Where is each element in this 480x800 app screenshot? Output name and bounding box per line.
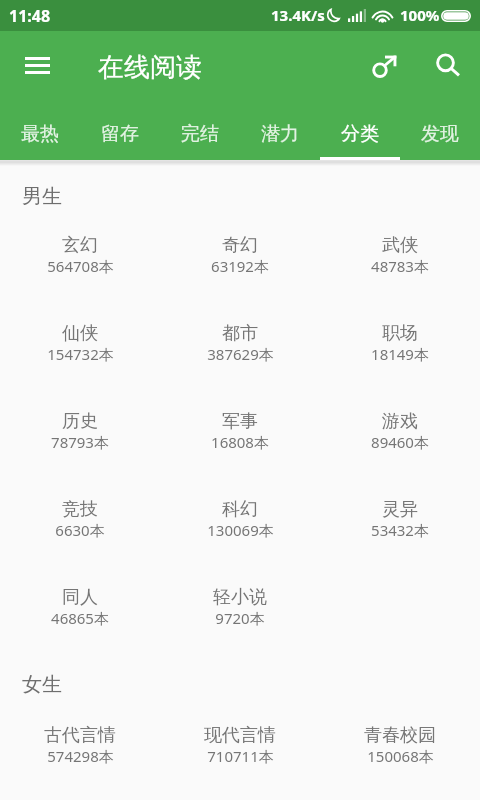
- button[interactable]: Open navigation menu: [12, 40, 62, 90]
- staticText: 青春校园: [364, 724, 436, 747]
- staticText: 武侠: [382, 234, 418, 257]
- staticText: 18149本: [371, 344, 429, 364]
- button[interactable]: 完结: [160, 101, 240, 160]
- staticText: 11:48: [9, 5, 51, 27]
- button[interactable]: 历史: [0, 388, 160, 476]
- button[interactable]: 现代言情: [160, 702, 320, 790]
- staticText: 710711本: [207, 746, 274, 766]
- staticText: 游戏: [382, 410, 418, 433]
- button[interactable]: 职场: [320, 300, 480, 388]
- staticText: 150068本: [367, 746, 434, 766]
- button[interactable]: 轻小说: [160, 564, 320, 652]
- button[interactable]: 分类: [320, 101, 400, 160]
- staticText: 潜力: [261, 122, 299, 146]
- button[interactable]: 武侠: [320, 212, 480, 300]
- button[interactable]: 最热: [0, 101, 80, 160]
- staticText: 仙侠: [62, 322, 98, 345]
- button[interactable]: 科幻: [160, 476, 320, 564]
- staticText: 现代言情: [204, 724, 276, 747]
- button[interactable]: 军事: [160, 388, 320, 476]
- button[interactable]: 留存: [80, 101, 160, 160]
- staticText: 16808本: [211, 432, 269, 452]
- staticText: 历史: [62, 410, 98, 433]
- staticText: 100%: [400, 5, 440, 25]
- staticText: 6630本: [55, 520, 105, 540]
- staticText: 科幻: [222, 498, 258, 521]
- staticText: 154732本: [47, 344, 114, 364]
- staticText: 63192本: [211, 256, 269, 276]
- button[interactable]: 灵异: [320, 476, 480, 564]
- button[interactable]: 奇幻: [160, 212, 320, 300]
- button[interactable]: Switch to male channel: [364, 47, 408, 91]
- staticText: 564708本: [47, 256, 114, 276]
- button[interactable]: 仙侠: [0, 300, 160, 388]
- staticText: 574298本: [47, 746, 114, 766]
- staticText: 留存: [101, 122, 139, 146]
- staticText: 46865本: [51, 608, 109, 628]
- button[interactable]: 玄幻: [0, 212, 160, 300]
- staticText: 奇幻: [222, 234, 258, 257]
- button[interactable]: 同人: [0, 564, 160, 652]
- staticText: 竞技: [62, 498, 98, 521]
- button[interactable]: 竞技: [0, 476, 160, 564]
- button[interactable]: Search: [424, 40, 468, 84]
- staticText: 48783本: [371, 256, 429, 276]
- button[interactable]: 都市: [160, 300, 320, 388]
- staticText: 职场: [382, 322, 418, 345]
- button[interactable]: 游戏: [320, 388, 480, 476]
- button[interactable]: 青春校园: [320, 702, 480, 790]
- staticText: 军事: [222, 410, 258, 433]
- button[interactable]: 潜力: [240, 101, 320, 160]
- staticText: 玄幻: [62, 234, 98, 257]
- staticText: 古代言情: [44, 724, 116, 747]
- staticText: 都市: [222, 322, 258, 345]
- staticText: 13.4K/s: [271, 5, 325, 25]
- staticText: 78793本: [51, 432, 109, 452]
- button[interactable]: 发现: [400, 101, 480, 160]
- staticText: 完结: [181, 122, 219, 146]
- staticText: 女生: [22, 672, 62, 697]
- staticText: 9720本: [215, 608, 265, 628]
- staticText: 分类: [341, 122, 379, 146]
- staticText: 灵异: [382, 498, 418, 521]
- staticText: 89460本: [371, 432, 429, 452]
- staticText: 最热: [21, 122, 59, 146]
- staticText: 387629本: [207, 344, 274, 364]
- staticText: 53432本: [371, 520, 429, 540]
- staticText: 男生: [22, 184, 62, 209]
- staticText: 同人: [62, 586, 98, 609]
- staticText: 在线阅读: [98, 51, 202, 84]
- button[interactable]: 古代言情: [0, 702, 160, 790]
- staticText: 发现: [421, 122, 459, 146]
- staticText: 轻小说: [213, 586, 267, 609]
- staticText: 130069本: [207, 520, 274, 540]
